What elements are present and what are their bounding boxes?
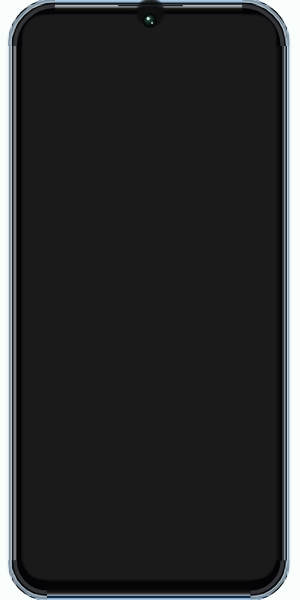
button[interactable]: Smartphone front view bbox=[0, 0, 300, 600]
